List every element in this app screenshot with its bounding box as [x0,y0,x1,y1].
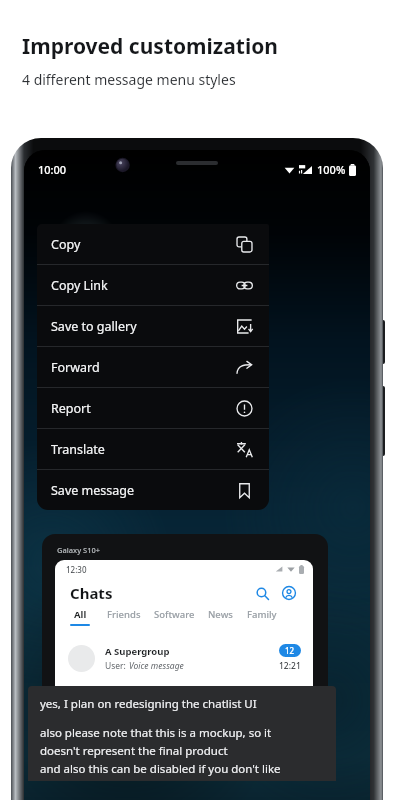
staticText: A Supergroup [105,645,170,658]
staticText: Chats [70,583,113,603]
button[interactable]: News [208,608,233,624]
staticText: Copy [51,236,81,253]
button[interactable]: Copy [37,224,269,264]
button[interactable]: Save message [37,470,269,510]
staticText: Improved customization [22,32,278,61]
staticText: 12:30 [66,564,87,575]
staticText: Software [154,608,195,621]
staticText: Report [51,400,91,417]
staticText: User: [105,660,129,672]
button[interactable]: Forward [37,347,269,387]
staticText: and also this can be disabled if you don… [40,761,281,777]
staticText: also please note that this is a mockup, … [40,725,272,741]
button[interactable]: A Supergroup [55,638,313,678]
staticText: Save to gallery [51,318,137,335]
button[interactable]: All [70,608,90,626]
button[interactable]: Save to gallery [37,306,269,346]
button[interactable]: Profile [279,583,299,603]
staticText: Galaxy S10+ [57,545,101,555]
button[interactable]: Search [252,583,272,603]
button[interactable]: Software [154,608,195,624]
staticText: News [208,608,233,621]
staticText: 12:21 [279,660,301,672]
staticText: doesn't represent the final product [40,743,228,759]
staticText: Friends [107,608,141,621]
staticText: 4 different message menu styles [22,70,236,89]
staticText: Family [247,608,277,621]
staticText: 12 [285,645,295,656]
staticText: Voice message [129,660,184,672]
staticText: Translate [51,441,105,458]
staticText: Save message [51,482,134,499]
staticText: Copy Link [51,277,108,294]
staticText: yes, I plan on redesigning the chatlist … [40,696,257,712]
button[interactable]: Family [247,608,277,624]
staticText: 10:00 [38,162,67,177]
staticText: Forward [51,359,100,376]
button[interactable]: Translate [37,429,269,469]
staticText: All [74,608,87,621]
staticText: 100% [317,162,346,177]
button[interactable]: Friends [107,608,141,624]
button[interactable]: Report [37,388,269,428]
button[interactable]: Copy Link [37,265,269,305]
